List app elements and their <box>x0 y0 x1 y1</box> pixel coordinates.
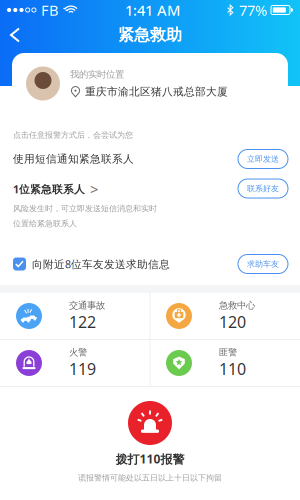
button[interactable]: 联系好友 <box>238 179 288 198</box>
staticText: 我的实时位置 <box>70 69 124 80</box>
staticText: 紧急救助 <box>118 25 182 45</box>
button[interactable]: 交通事故 <box>0 293 150 339</box>
button[interactable]: 立即发送 <box>238 149 288 168</box>
staticText: 风险发生时，可立即发送短信消息和实时 <box>13 204 157 213</box>
button[interactable]: 拨打110报警 <box>128 401 172 445</box>
staticText: 求助车友 <box>247 259 279 269</box>
button[interactable]: 火警 <box>0 340 150 386</box>
staticText: 1位紧急联系人 <box>13 182 85 196</box>
staticText: 火警 <box>69 347 87 358</box>
staticText: 点击任意报警方式后，会尝试为您 <box>13 130 133 140</box>
staticText: 77% <box>239 0 267 20</box>
button[interactable]: 匪警 <box>150 340 300 386</box>
staticText: 使用短信通知紧急联系人 <box>13 152 134 165</box>
staticText: > <box>90 179 98 199</box>
staticText: 立即发送 <box>247 154 279 164</box>
staticText: 1:41 AM <box>125 0 180 20</box>
button[interactable]: Back <box>0 20 30 50</box>
staticText: 120 <box>219 311 246 332</box>
button[interactable]: 1位紧急联系人 <box>13 179 98 199</box>
staticText: 匪警 <box>219 347 237 358</box>
staticText: 110 <box>219 358 246 379</box>
button[interactable]: 求助车友 <box>238 254 288 273</box>
staticText: 联系好友 <box>247 184 279 193</box>
staticText: 重庆市渝北区猪八戒总部大厦 <box>85 85 228 98</box>
button[interactable]: 向附近8位车友发送求助信息 <box>13 257 170 271</box>
staticText: 谎报警情可能处以五日以上十日以下拘留 <box>78 473 222 483</box>
staticText: 急救中心 <box>219 300 255 311</box>
staticText: 位置给紧急联系人 <box>13 219 77 228</box>
staticText: 122 <box>69 311 96 332</box>
staticText: 交通事故 <box>69 300 105 311</box>
staticText: 119 <box>69 358 96 379</box>
staticText: 拨打110报警 <box>115 451 184 467</box>
staticText: FB <box>41 0 59 20</box>
button[interactable]: 急救中心 <box>150 293 300 339</box>
staticText: 向附近8位车友发送求助信息 <box>32 257 170 271</box>
